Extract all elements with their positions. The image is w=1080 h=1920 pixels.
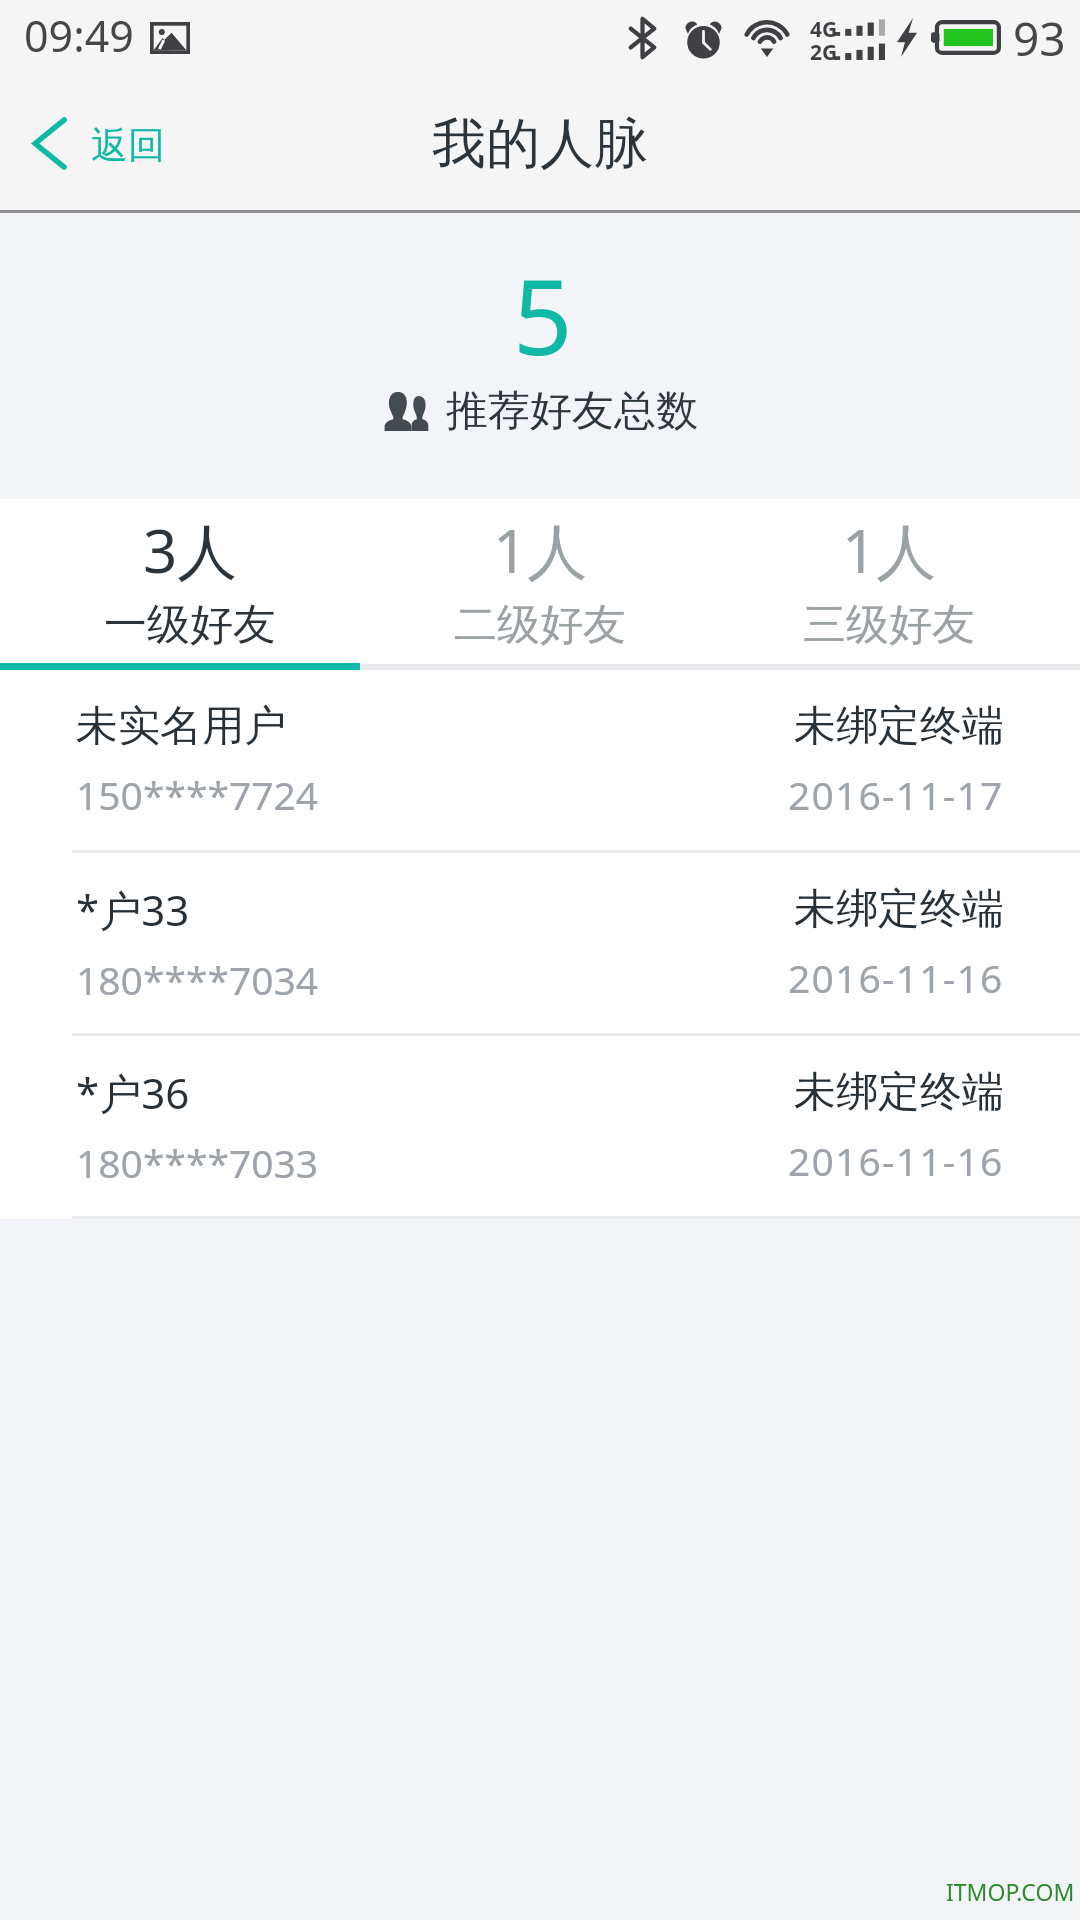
staticText: 180****7034: [76, 953, 319, 1006]
staticText: 未绑定终端: [794, 700, 1004, 753]
staticText: 返回: [91, 122, 165, 169]
staticText: *户33: [76, 881, 190, 938]
staticText: 4G: [810, 15, 838, 44]
button[interactable]: *户36: [0, 1036, 1080, 1216]
staticText: 三级好友: [803, 598, 975, 652]
button[interactable]: 未实名用户: [0, 670, 1080, 850]
staticText: 1人: [493, 509, 588, 591]
staticText: 推荐好友总数: [446, 385, 698, 438]
staticText: 180****7033: [76, 1136, 319, 1189]
staticText: 未绑定终端: [794, 1066, 1004, 1119]
staticText: 1人: [842, 509, 937, 591]
staticText: 我的人脉: [432, 110, 648, 178]
staticText: 150****7724: [76, 768, 319, 821]
button[interactable]: 1人: [360, 499, 720, 642]
staticText: 09:49: [24, 6, 134, 65]
button[interactable]: *户33: [0, 853, 1080, 1033]
staticText: 5: [513, 244, 573, 386]
button[interactable]: Back: [0, 95, 191, 192]
staticText: ITMOP.COM: [946, 1876, 1075, 1907]
staticText: *户36: [76, 1064, 190, 1121]
button[interactable]: 3人: [0, 499, 360, 642]
staticText: 2016-11-17: [788, 768, 1004, 821]
staticText: 2016-11-16: [788, 951, 1004, 1004]
staticText: 一级好友: [104, 598, 276, 652]
staticText: 3人: [143, 509, 238, 591]
staticText: 未实名用户: [76, 700, 286, 753]
other: Back: [32, 117, 67, 170]
staticText: 93: [1013, 7, 1066, 70]
staticText: 二级好友: [454, 598, 626, 652]
staticText: 2G: [810, 38, 838, 67]
button[interactable]: 1人: [720, 499, 1080, 642]
staticText: 2016-11-16: [788, 1134, 1004, 1187]
staticText: 未绑定终端: [794, 883, 1004, 936]
